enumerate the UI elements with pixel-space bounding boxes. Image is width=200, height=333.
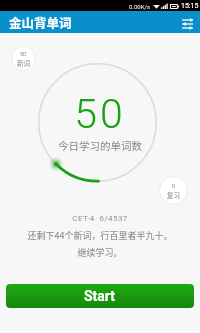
staticText: 50 xyxy=(0,90,200,138)
staticText: 新词 xyxy=(17,58,30,67)
button[interactable]: Start xyxy=(6,284,194,308)
button[interactable]: 0 xyxy=(159,176,188,205)
staticText: 50 xyxy=(20,51,27,57)
staticText: 金山背单词 xyxy=(9,13,72,31)
button[interactable]: Settings xyxy=(178,15,196,33)
staticText: 还剩下44个新词，行百里者半九十。 继续学习。 xyxy=(0,229,200,258)
staticText: Start xyxy=(84,288,116,304)
staticText: 今日学习的单词数 xyxy=(0,138,200,153)
staticText: 复习 xyxy=(167,190,180,199)
staticText: 15:15 xyxy=(181,2,199,10)
staticText: 0 xyxy=(172,183,176,189)
staticText: 0.00K/s xyxy=(129,3,151,10)
staticText: CET-4 6/4537 xyxy=(0,214,200,223)
button[interactable]: 50 xyxy=(11,46,36,71)
